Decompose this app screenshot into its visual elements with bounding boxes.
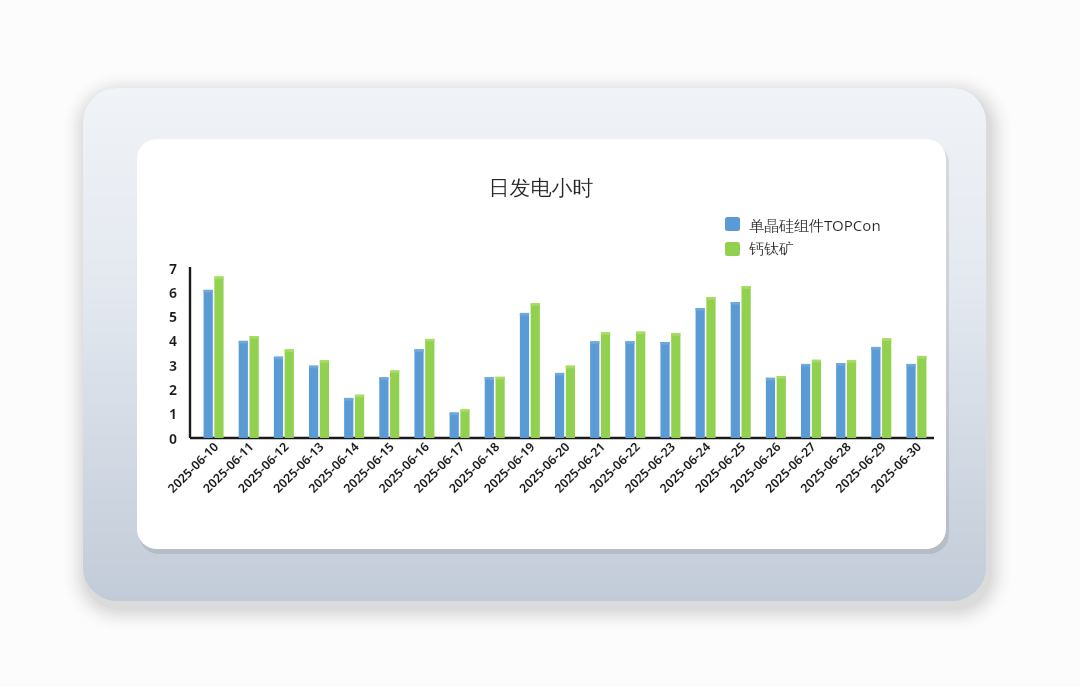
button[interactable]: Daily generation hours chart <box>0 0 1080 687</box>
